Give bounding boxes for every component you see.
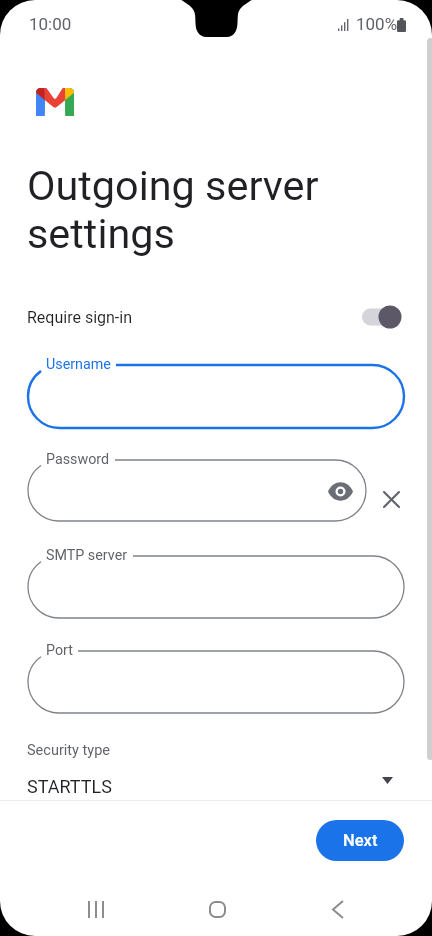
button[interactable]: Require sign-in xyxy=(0,295,432,339)
staticText: Username xyxy=(46,356,111,373)
button[interactable]: Back xyxy=(302,886,374,936)
button[interactable]: SMTP server xyxy=(28,556,404,618)
button[interactable]: Clear password xyxy=(379,487,404,512)
button[interactable]: Show password xyxy=(325,476,355,506)
button[interactable]: Password xyxy=(28,460,366,521)
staticText: Port xyxy=(46,642,73,659)
staticText: 10:00 xyxy=(29,14,72,34)
staticText: Security type xyxy=(27,742,110,759)
staticText: Require sign-in xyxy=(27,308,132,327)
button[interactable]: Next xyxy=(316,820,404,861)
staticText: Password xyxy=(46,451,110,468)
button[interactable]: Username xyxy=(28,365,404,428)
staticText: Outgoing server settings xyxy=(27,162,347,258)
staticText: STARTTLS xyxy=(27,776,112,797)
staticText: SMTP server xyxy=(46,547,128,564)
button[interactable]: Port xyxy=(28,651,404,713)
button[interactable]: Home xyxy=(181,886,253,936)
staticText: Next xyxy=(343,831,378,850)
button[interactable]: Require sign-in toggle xyxy=(362,304,402,330)
button[interactable]: Security type xyxy=(0,730,432,800)
staticText: 100% xyxy=(356,14,398,34)
button[interactable]: Recent apps xyxy=(60,886,132,936)
